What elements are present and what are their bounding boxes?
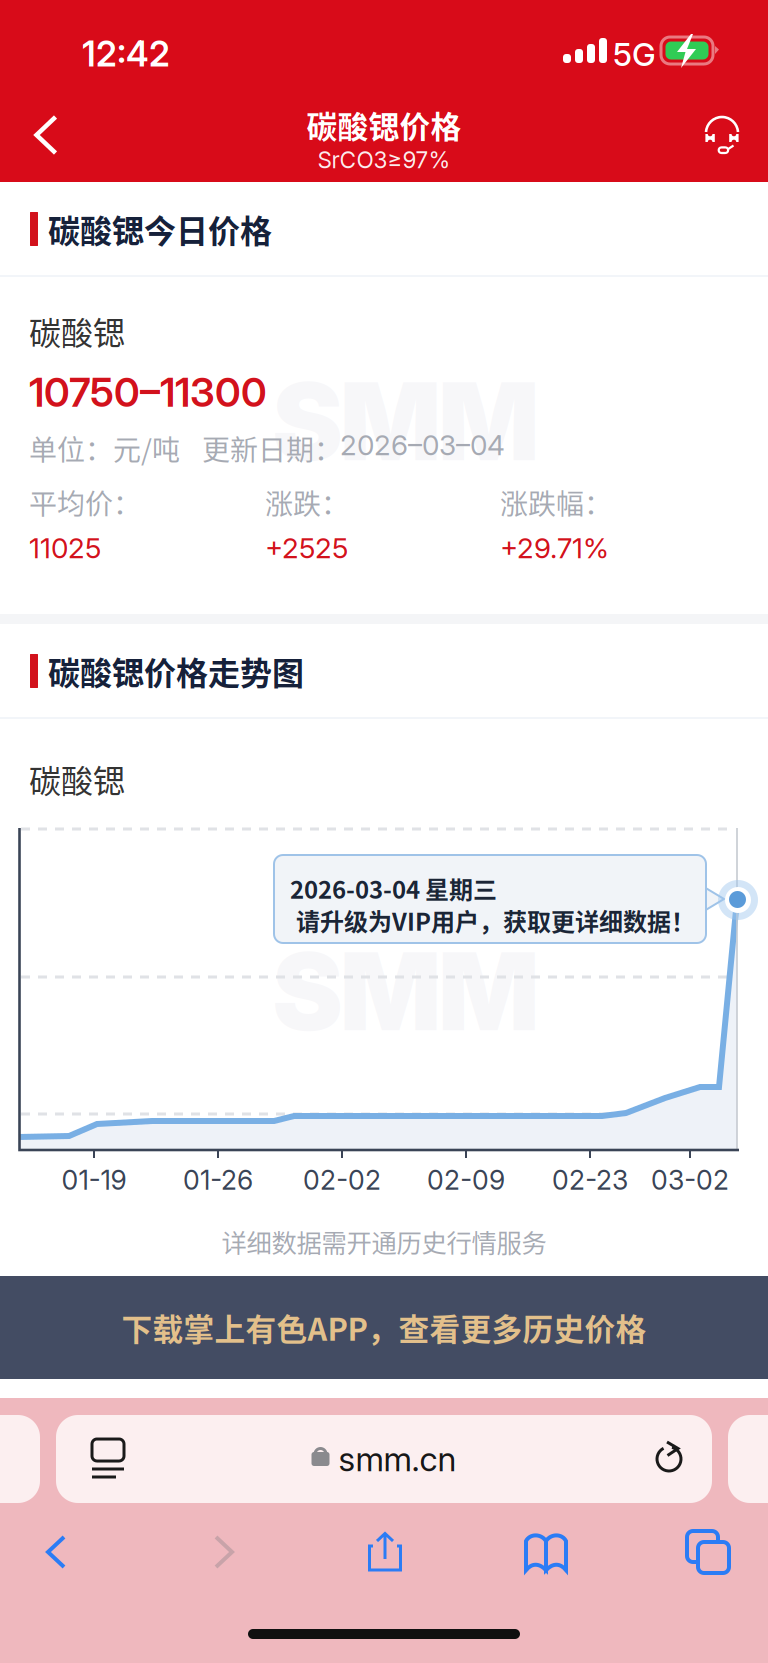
staticText: 2026–03–04: [340, 428, 505, 462]
staticText: 11025: [29, 531, 101, 565]
staticText: 02-02: [303, 1164, 381, 1196]
button[interactable]: Customer service: [676, 90, 768, 180]
button[interactable]: Share: [333, 1510, 437, 1594]
staticText: 01-19: [61, 1164, 126, 1196]
staticText: 01-26: [183, 1164, 253, 1196]
staticText: 10750–11300: [29, 368, 267, 416]
staticText: SMM: [272, 357, 540, 486]
staticText: SMM: [272, 927, 540, 1056]
button[interactable]: Back: [4, 1510, 108, 1594]
staticText: smm.cn: [338, 1439, 456, 1479]
staticText: 单位：: [29, 428, 113, 468]
staticText: 下载掌上有色APP，查看更多历史价格: [121, 1305, 646, 1350]
button[interactable]: Tabs: [656, 1510, 760, 1594]
staticText: 12:42: [82, 33, 170, 75]
button[interactable]: Reload: [628, 1415, 712, 1503]
button[interactable]: Address, smm.cn: [56, 1415, 712, 1503]
staticText: 碳酸锶价格: [306, 103, 461, 147]
staticText: +29.71%: [500, 531, 609, 565]
button[interactable]: 下载掌上有色APP，查看更多历史价格: [0, 1276, 768, 1379]
staticText: 02-23: [552, 1164, 628, 1196]
staticText: 2026-03-04 星期三: [290, 871, 497, 906]
staticText: 碳酸锶今日价格: [48, 206, 272, 252]
button[interactable]: Forward: [172, 1510, 276, 1594]
button[interactable]: Bookmarks: [494, 1510, 598, 1594]
staticText: 详细数据需开通历史行情服务: [221, 1223, 546, 1260]
staticText: 涨跌：: [265, 482, 349, 522]
button[interactable]: Back: [0, 90, 92, 180]
staticText: 02-09: [427, 1164, 505, 1196]
staticText: 元/吨: [113, 428, 180, 468]
button[interactable]: Page settings: [66, 1415, 150, 1503]
staticText: 碳酸锶: [29, 308, 125, 354]
staticText: 请升级为VIP用户，获取更详细数据！: [296, 903, 695, 938]
staticText: 碳酸锶价格走势图: [48, 648, 304, 694]
staticText: SrCO3≥97%: [317, 146, 450, 174]
staticText: +2525: [265, 531, 348, 565]
staticText: 碳酸锶: [29, 756, 125, 802]
staticText: 涨跌幅：: [500, 482, 612, 522]
staticText: 平均价：: [29, 482, 141, 522]
staticText: 更新日期：: [202, 428, 342, 468]
staticText: 03-02: [651, 1164, 729, 1196]
staticText: 5G: [613, 35, 656, 74]
